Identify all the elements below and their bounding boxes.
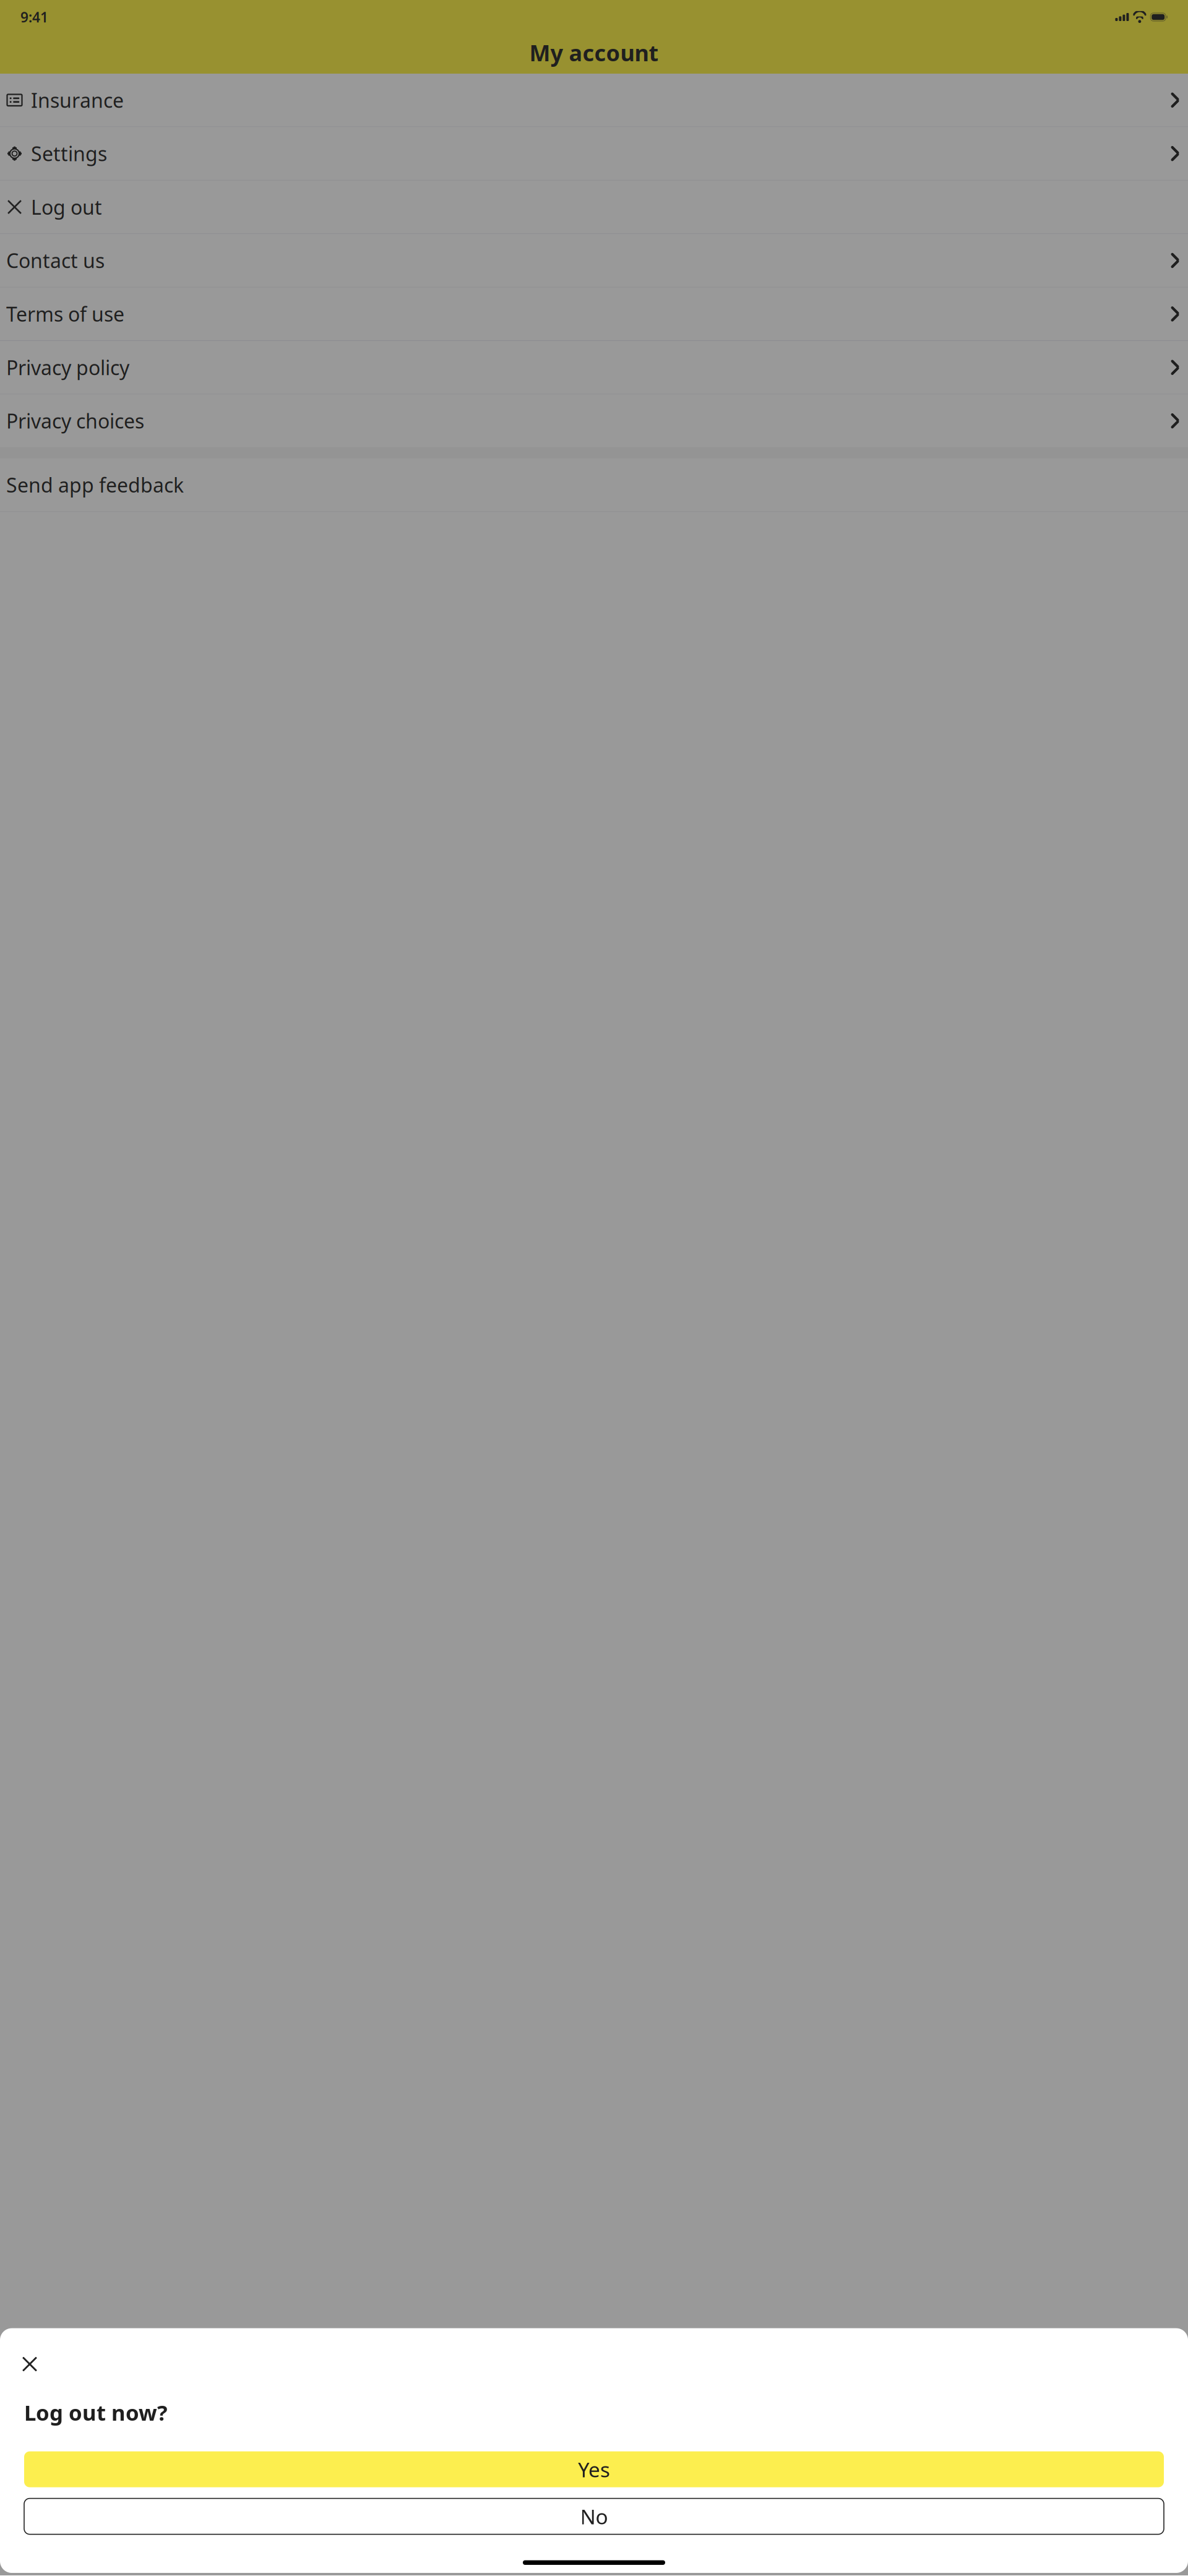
button[interactable]: Insurance [0, 74, 1188, 127]
button[interactable]: Yes [24, 2451, 1164, 2487]
staticText: My account [529, 38, 659, 67]
button[interactable]: Terms of use [0, 287, 1188, 340]
staticText: No [580, 2503, 608, 2530]
staticText: Send app feedback [6, 472, 184, 498]
staticText: Insurance [31, 87, 124, 113]
button[interactable]: No [24, 2498, 1164, 2534]
staticText: Log out now? [24, 2398, 168, 2427]
staticText: Contact us [6, 247, 105, 274]
staticText: Privacy choices [6, 408, 144, 434]
button[interactable]: Settings [0, 127, 1188, 180]
staticText: Privacy policy [6, 354, 129, 381]
staticText: Settings [31, 140, 107, 167]
staticText: Terms of use [6, 301, 124, 327]
button[interactable]: Close [0, 2354, 1188, 2375]
staticText: 9:41 [20, 8, 48, 26]
button[interactable]: Privacy policy [0, 341, 1188, 394]
button[interactable]: Log out [0, 181, 1188, 233]
staticText: Yes [578, 2456, 610, 2483]
button[interactable]: Send app feedback [0, 458, 1188, 511]
staticText: Log out [31, 194, 102, 220]
button[interactable]: Privacy choices [0, 394, 1188, 447]
button[interactable]: Contact us [0, 234, 1188, 287]
